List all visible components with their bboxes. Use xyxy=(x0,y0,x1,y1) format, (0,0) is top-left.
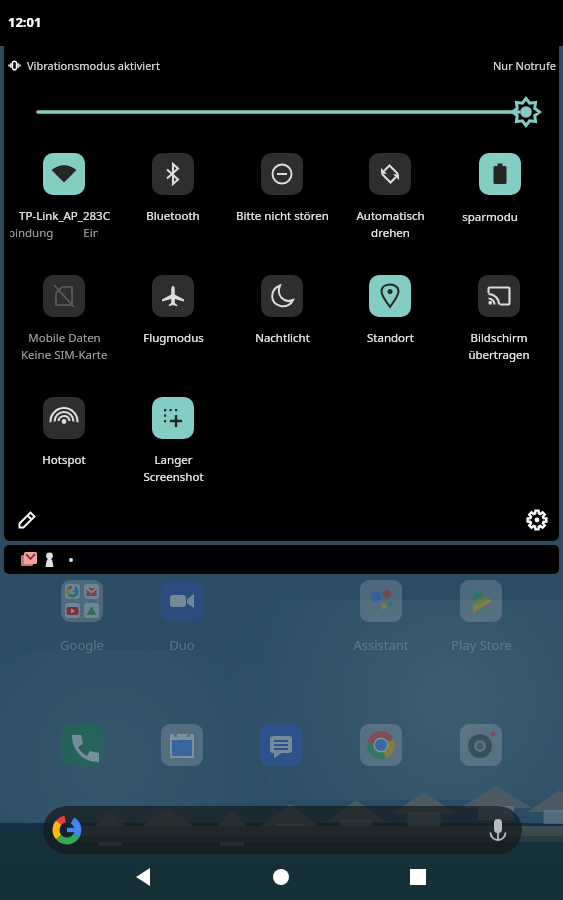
staticText: Assistant xyxy=(353,636,409,654)
button[interactable]: Google Ordner xyxy=(61,580,103,622)
button[interactable]: TP-Link_AP_283C xyxy=(10,147,118,259)
staticText: Keine SIM-Karte xyxy=(21,347,108,363)
button[interactable]: Energiesparmodus xyxy=(445,147,553,259)
staticText: Vibrationsmodus aktiviert xyxy=(27,58,160,73)
button[interactable]: Bitte nicht stören xyxy=(228,147,336,259)
button[interactable] xyxy=(161,724,203,766)
staticText: Bluetooth xyxy=(146,208,200,224)
button[interactable]: Standort xyxy=(336,269,444,381)
button[interactable]: Helligkeit xyxy=(30,96,540,128)
staticText: Energiesparmodus xyxy=(462,209,518,225)
staticText: Bitte nicht stören xyxy=(236,208,329,224)
staticText: Bildschirm übertragen xyxy=(468,330,530,363)
button[interactable]: Mobile Daten xyxy=(10,269,118,381)
staticText: 12:01 xyxy=(8,13,42,31)
button[interactable]: Bluetooth xyxy=(119,147,227,259)
button[interactable]: Bearbeiten xyxy=(11,504,43,536)
button[interactable] xyxy=(460,580,502,622)
button[interactable]: Automatisch drehen xyxy=(336,147,444,259)
staticText: Duo xyxy=(169,636,195,654)
button[interactable] xyxy=(360,580,402,622)
staticText: Play Store xyxy=(451,636,512,654)
staticText: Mobile Daten xyxy=(28,330,101,346)
button[interactable] xyxy=(61,724,103,766)
button[interactable] xyxy=(460,724,502,766)
button[interactable]: Benachrichtigungen xyxy=(4,545,559,574)
button[interactable]: Bildschirm übertragen xyxy=(445,269,553,381)
staticText: Hotspot xyxy=(42,452,86,468)
button[interactable] xyxy=(161,580,203,622)
button[interactable]: Suchen xyxy=(43,806,522,854)
staticText: Standort xyxy=(367,330,414,346)
staticText: Nachtlicht xyxy=(255,330,310,346)
staticText: Nur Notrufe xyxy=(493,58,556,73)
other: Navigationsleiste xyxy=(120,858,450,898)
staticText: TP-Link_AP_283C xyxy=(19,208,110,224)
button[interactable]: Nachtlicht xyxy=(228,269,336,381)
button[interactable]: Flugmodus xyxy=(119,269,227,381)
button[interactable] xyxy=(260,724,302,766)
staticText: Flugmodus xyxy=(143,330,204,346)
staticText: Verbindung Eingeschränkt xyxy=(10,225,98,241)
staticText: Google xyxy=(60,636,104,654)
button[interactable] xyxy=(360,724,402,766)
staticText: Automatisch drehen xyxy=(356,208,425,241)
button[interactable]: Langer Screenshot xyxy=(119,391,227,503)
button[interactable]: Einstellungen xyxy=(521,504,553,536)
button[interactable]: Hotspot xyxy=(10,391,118,503)
staticText: Langer Screenshot xyxy=(143,452,204,485)
